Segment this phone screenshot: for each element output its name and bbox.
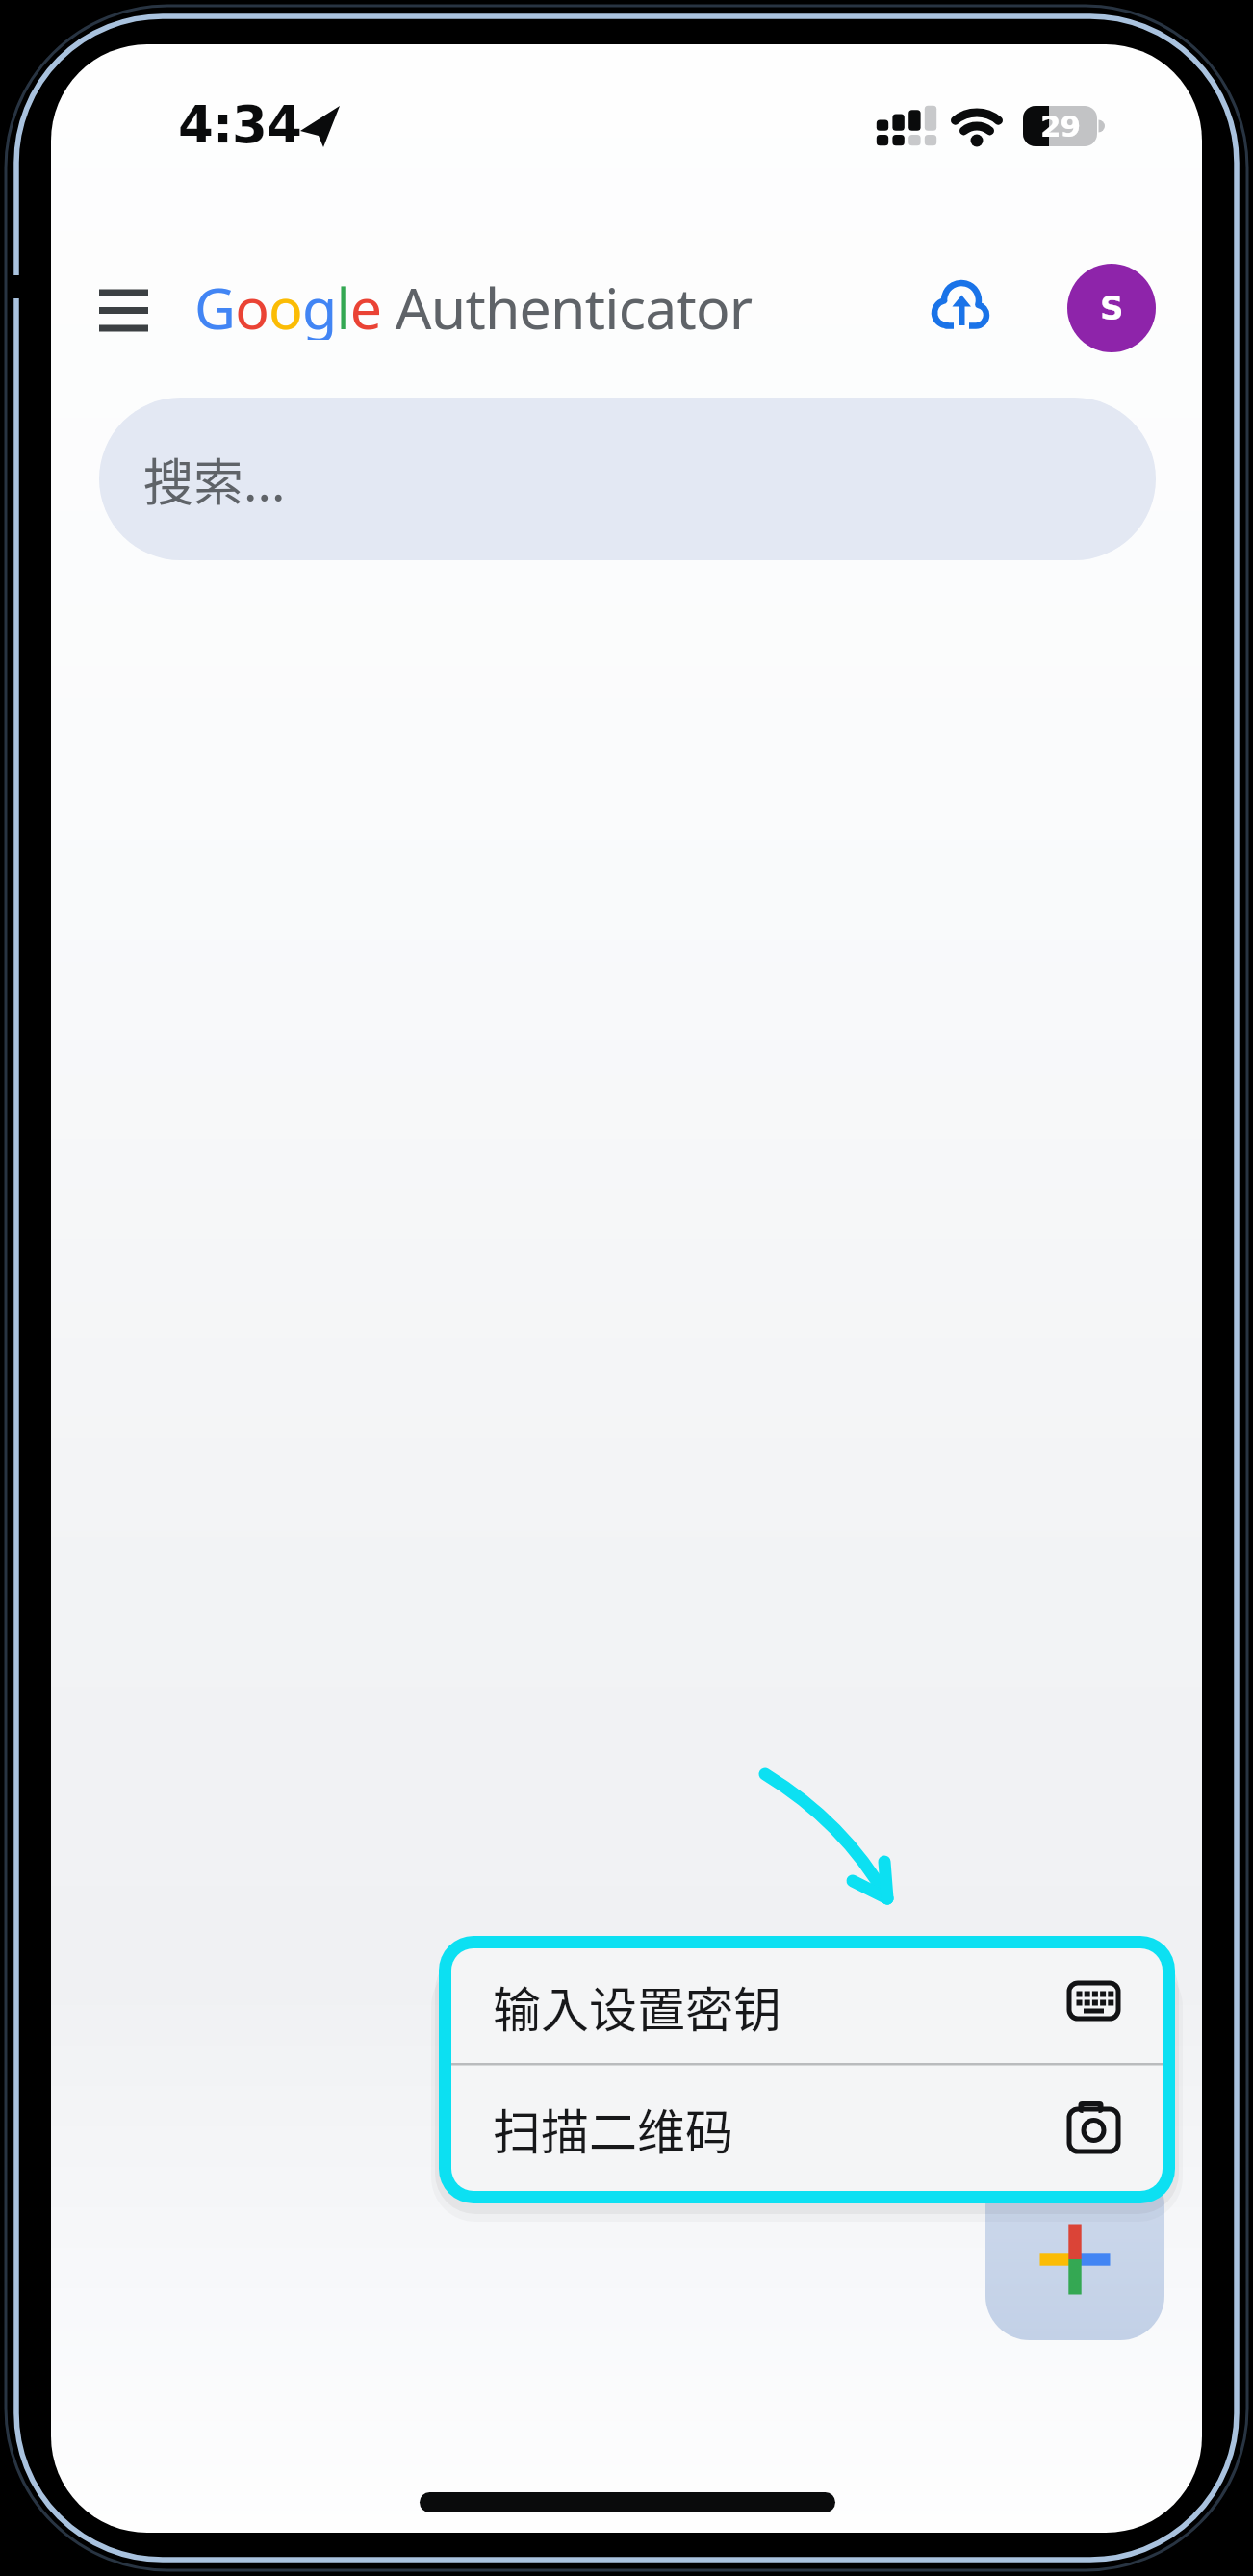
staticText: 搜索... (143, 443, 286, 515)
staticText: 输入设置密钥 (493, 1971, 781, 2041)
button[interactable]: S (1067, 264, 1156, 352)
button[interactable]: 扫描二维码 (451, 2065, 1163, 2191)
button[interactable]: 输入设置密钥 (451, 1948, 1163, 2063)
staticText: Google Authenticator (194, 269, 753, 340)
button[interactable] (916, 266, 1005, 347)
button[interactable] (985, 2161, 1164, 2340)
button[interactable] (85, 271, 166, 348)
staticText: 扫描二维码 (493, 2094, 733, 2163)
button[interactable]: 搜索... (99, 398, 1156, 560)
staticText: 4:34 (178, 95, 301, 155)
staticText: S (1100, 289, 1124, 327)
staticText: 29 (1040, 109, 1081, 143)
